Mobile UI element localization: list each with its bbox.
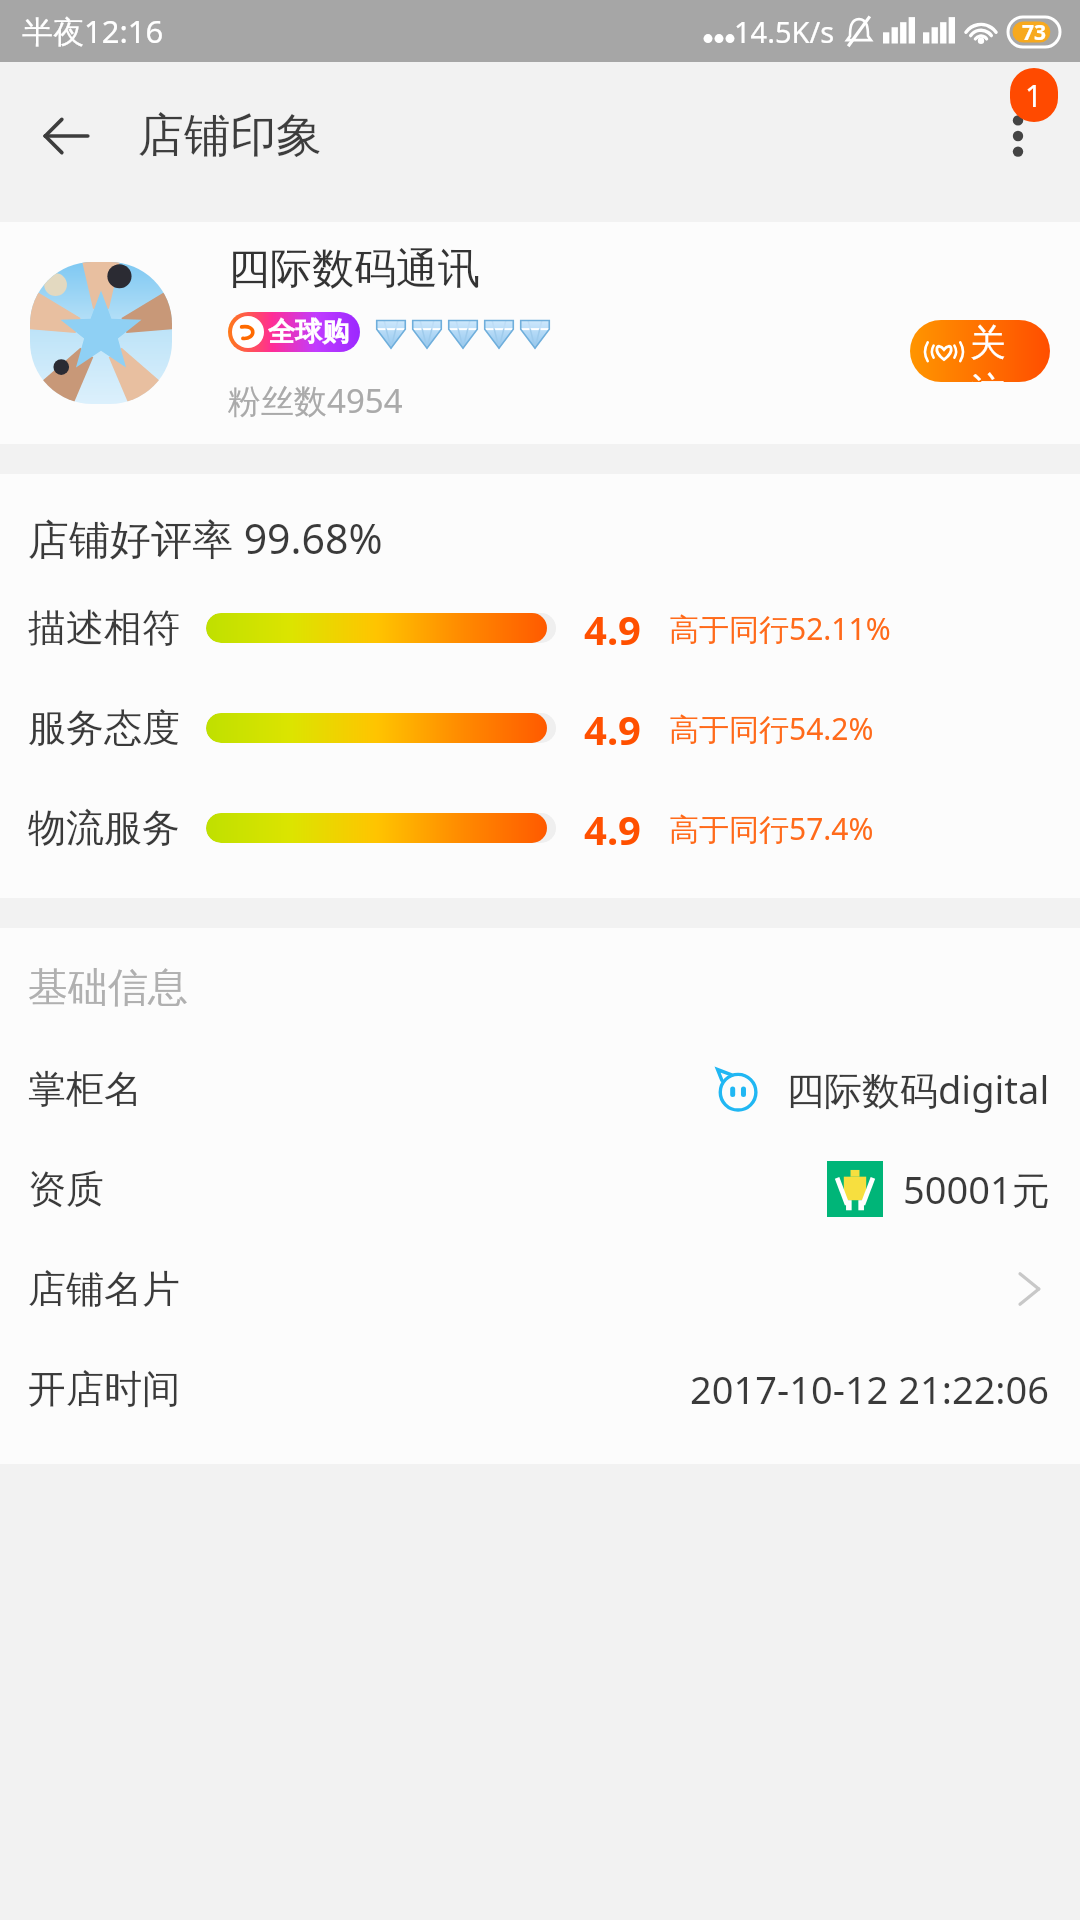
button[interactable]: 店铺名片 [0, 1260, 1080, 1318]
button[interactable]: 店铺头像 [30, 262, 172, 404]
staticText: 服务态度 [28, 704, 206, 752]
staticText: 高于同行57.4% [669, 808, 874, 849]
staticText: 4.9 [584, 602, 641, 654]
staticText: 14.5K/s [734, 12, 835, 51]
button[interactable]: 资质 [0, 1160, 1080, 1218]
staticText: 4.9 [584, 702, 641, 754]
staticText: 店铺好评率 99.68% [28, 510, 383, 566]
staticText: 关注 [970, 320, 1036, 382]
staticText: 1 [1025, 75, 1043, 116]
staticText: 2017-10-12 21:22:06 [690, 1363, 1050, 1415]
staticText: 物流服务 [28, 804, 206, 852]
staticText: 四际数码通讯 [228, 243, 480, 296]
staticText: 开店时间 [28, 1365, 180, 1413]
button[interactable]: 关注 [910, 320, 1050, 382]
staticText: 店铺名片 [28, 1265, 180, 1313]
button[interactable]: 返回 [26, 96, 106, 176]
staticText: 全球购 [268, 315, 349, 349]
staticText: 4.9 [584, 802, 641, 854]
button[interactable]: 服务态度 [0, 702, 1080, 754]
staticText: 50001元 [903, 1163, 1050, 1215]
staticText: 四际数码digital [786, 1063, 1050, 1115]
button[interactable]: 掌柜名 [0, 1060, 1080, 1118]
button[interactable]: 更多 [970, 88, 1066, 184]
staticText: 高于同行52.11% [669, 608, 891, 649]
staticText: 资质 [28, 1165, 104, 1213]
button[interactable]: 开店时间 [0, 1360, 1080, 1418]
staticText: 73 [1022, 18, 1047, 47]
button[interactable]: 物流服务 [0, 802, 1080, 854]
staticText: 基础信息 [28, 962, 188, 1012]
staticText: 描述相符 [28, 604, 206, 652]
staticText: 半夜12:16 [22, 10, 164, 52]
other: 查看店铺名片 [1010, 1265, 1050, 1313]
button[interactable]: 描述相符 [0, 602, 1080, 654]
staticText: 高于同行54.2% [669, 708, 874, 749]
staticText: 店铺印象 [138, 107, 322, 165]
staticText: 粉丝数4954 [228, 378, 403, 423]
staticText: 掌柜名 [28, 1065, 142, 1113]
